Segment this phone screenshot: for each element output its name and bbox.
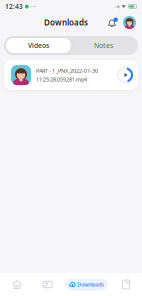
button[interactable]: Files bbox=[111, 273, 141, 296]
button[interactable]: Videos bbox=[6, 38, 71, 53]
button[interactable]: PART - 1 _PNX_2022-07-30 bbox=[4, 60, 138, 90]
button[interactable]: Downloads bbox=[65, 278, 108, 290]
button[interactable]: Notifications bbox=[106, 15, 119, 30]
staticText: Downloads bbox=[44, 17, 88, 28]
button[interactable]: Profile bbox=[119, 16, 136, 29]
staticText: Notes bbox=[94, 41, 113, 50]
button[interactable]: Cards bbox=[33, 273, 62, 296]
button[interactable]: Notes bbox=[71, 38, 136, 53]
staticText: Videos bbox=[28, 41, 49, 50]
button[interactable]: Home bbox=[1, 273, 33, 296]
staticText: 11:25:28.059281.mp4 bbox=[36, 76, 87, 83]
staticText: Downloads bbox=[77, 281, 104, 288]
staticText: 12:43 bbox=[5, 2, 23, 11]
staticText: PART - 1 _PNX_2022-07-30 bbox=[36, 67, 98, 74]
